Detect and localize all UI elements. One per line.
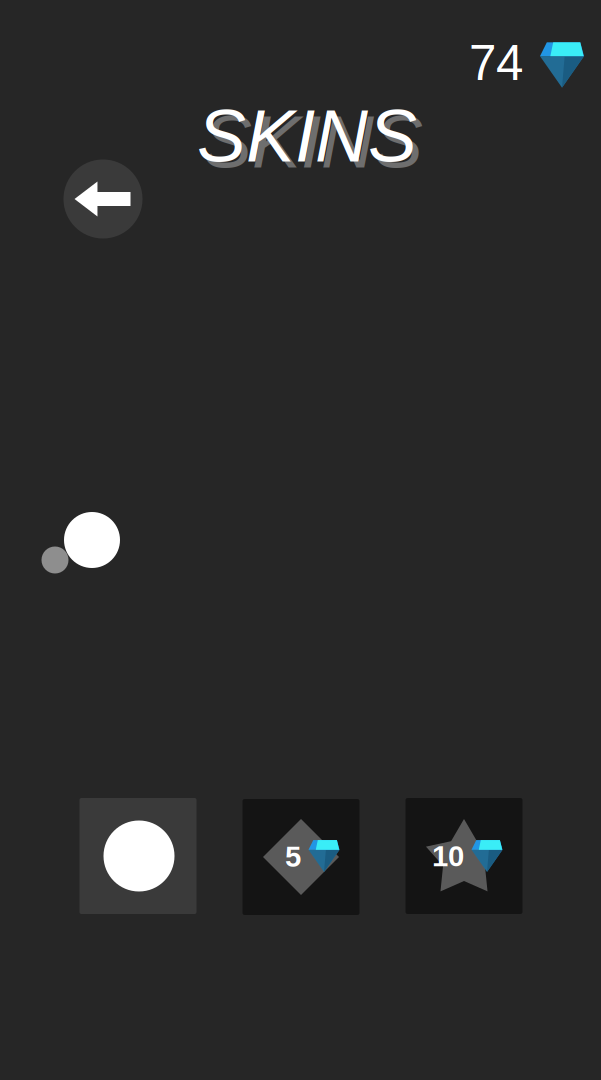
staticText: 74 (469, 35, 523, 90)
button[interactable]: Diamond skin, costs 5 gems (242, 799, 359, 915)
button[interactable]: Back (63, 159, 143, 239)
staticText: 10 (432, 840, 464, 872)
button[interactable]: Star skin, costs 10 gems (405, 798, 522, 914)
staticText: 5 (285, 840, 301, 873)
staticText: SKINS (197, 95, 417, 177)
staticText: SKINS (203, 101, 423, 183)
button[interactable]: Default skin, selected (79, 798, 196, 914)
button[interactable]: 74 gems (461, 35, 591, 95)
